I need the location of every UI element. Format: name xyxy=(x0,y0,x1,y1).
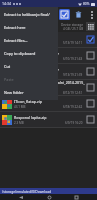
staticText: Rosponol lapita.zip xyxy=(14,115,47,120)
staticText: 9/13/19 21:39 xyxy=(63,73,83,77)
staticText: 6/10/19 21:43 xyxy=(63,57,83,61)
button[interactable]: Select file xyxy=(86,51,95,60)
button[interactable]: lapdini_wolend_lll_parcdpalni_2014-2015_… xyxy=(0,80,97,95)
staticText: IMG_20190908_141839.rar xyxy=(14,51,60,56)
button[interactable]: ITicon_flatap.zip xyxy=(0,96,97,111)
staticText: IMG_20190908_142258.rar xyxy=(14,67,60,72)
staticText: 730 kB xyxy=(14,91,24,95)
staticText: 292 kB xyxy=(14,41,24,45)
button: Paste xyxy=(0,73,58,86)
button[interactable]: Home xyxy=(42,194,56,200)
staticText: lapdini_wolend_lll_parcdpalni_2014-2015_… xyxy=(14,80,85,90)
staticText: 8/12/19 12:51 xyxy=(63,91,83,95)
button[interactable]: Grid view xyxy=(86,22,95,31)
button[interactable]: New folder xyxy=(0,86,58,99)
staticText: Cut xyxy=(4,64,11,69)
staticText: hokkanja final.rar xyxy=(14,35,45,40)
button[interactable]: Select file xyxy=(86,35,95,44)
staticText: Extract here xyxy=(4,25,26,30)
button[interactable]: hokkanja final.rar xyxy=(0,32,97,47)
button[interactable]: Select file xyxy=(86,67,95,76)
button[interactable]: Select file xyxy=(86,83,95,92)
staticText: 6/18/19 22:42 xyxy=(63,105,83,109)
staticText: 2.3 MB xyxy=(14,121,24,125)
button[interactable]: IMG_20190908_142258.rar xyxy=(0,64,97,79)
staticText: 5/13/19 14:11 xyxy=(63,41,83,45)
button[interactable]: Extract files... xyxy=(0,34,58,47)
staticText: Device storage xyxy=(61,23,84,27)
staticText: 14:34 xyxy=(2,1,11,6)
staticText: 80% xyxy=(83,2,90,6)
button[interactable]: Copy to clipboard xyxy=(0,47,58,60)
staticText: New folder xyxy=(4,90,24,95)
staticText: 43.1 MB xyxy=(14,105,26,109)
button[interactable]: Recent apps xyxy=(69,194,83,200)
button[interactable]: Back xyxy=(14,194,28,200)
button[interactable]: IMG_20190908_141839.rar xyxy=(0,48,97,63)
staticText: Copy to clipboard xyxy=(4,51,36,56)
button[interactable]: Select file xyxy=(86,115,95,124)
staticText: Extract to hekloanjo final/ xyxy=(4,12,50,17)
button[interactable]: Select file xyxy=(86,99,95,108)
staticText: Paste xyxy=(4,77,14,82)
staticText: 6/9/19 16:20 xyxy=(65,121,83,125)
button[interactable]: Delete xyxy=(73,9,84,20)
button[interactable]: Select all xyxy=(59,9,70,20)
button[interactable]: /storage/emulated/0/Download xyxy=(0,188,97,194)
button[interactable]: Rosponol lapita.zip xyxy=(0,112,97,127)
staticText: Extract files... xyxy=(4,38,28,43)
button[interactable]: More options xyxy=(87,10,96,19)
button[interactable]: Extract here xyxy=(0,21,58,34)
button[interactable]: Extract to hekloanjo final/ xyxy=(0,8,58,21)
staticText: /storage/emulated/0/Download xyxy=(2,189,52,193)
staticText: ITicon_flatap.zip xyxy=(14,99,42,104)
staticText: 4 GB / 25.7 GB xyxy=(63,27,84,31)
button[interactable]: Cut xyxy=(0,60,58,73)
